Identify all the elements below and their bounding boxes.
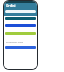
- button[interactable]: [5, 24, 36, 27]
- button[interactable]: [5, 17, 36, 20]
- staticText: Ordini: [6, 4, 16, 8]
- button[interactable]: [5, 46, 36, 49]
- button[interactable]: [5, 32, 36, 35]
- button[interactable]: [5, 10, 36, 13]
- staticText: Transport Serv: [6, 40, 24, 43]
